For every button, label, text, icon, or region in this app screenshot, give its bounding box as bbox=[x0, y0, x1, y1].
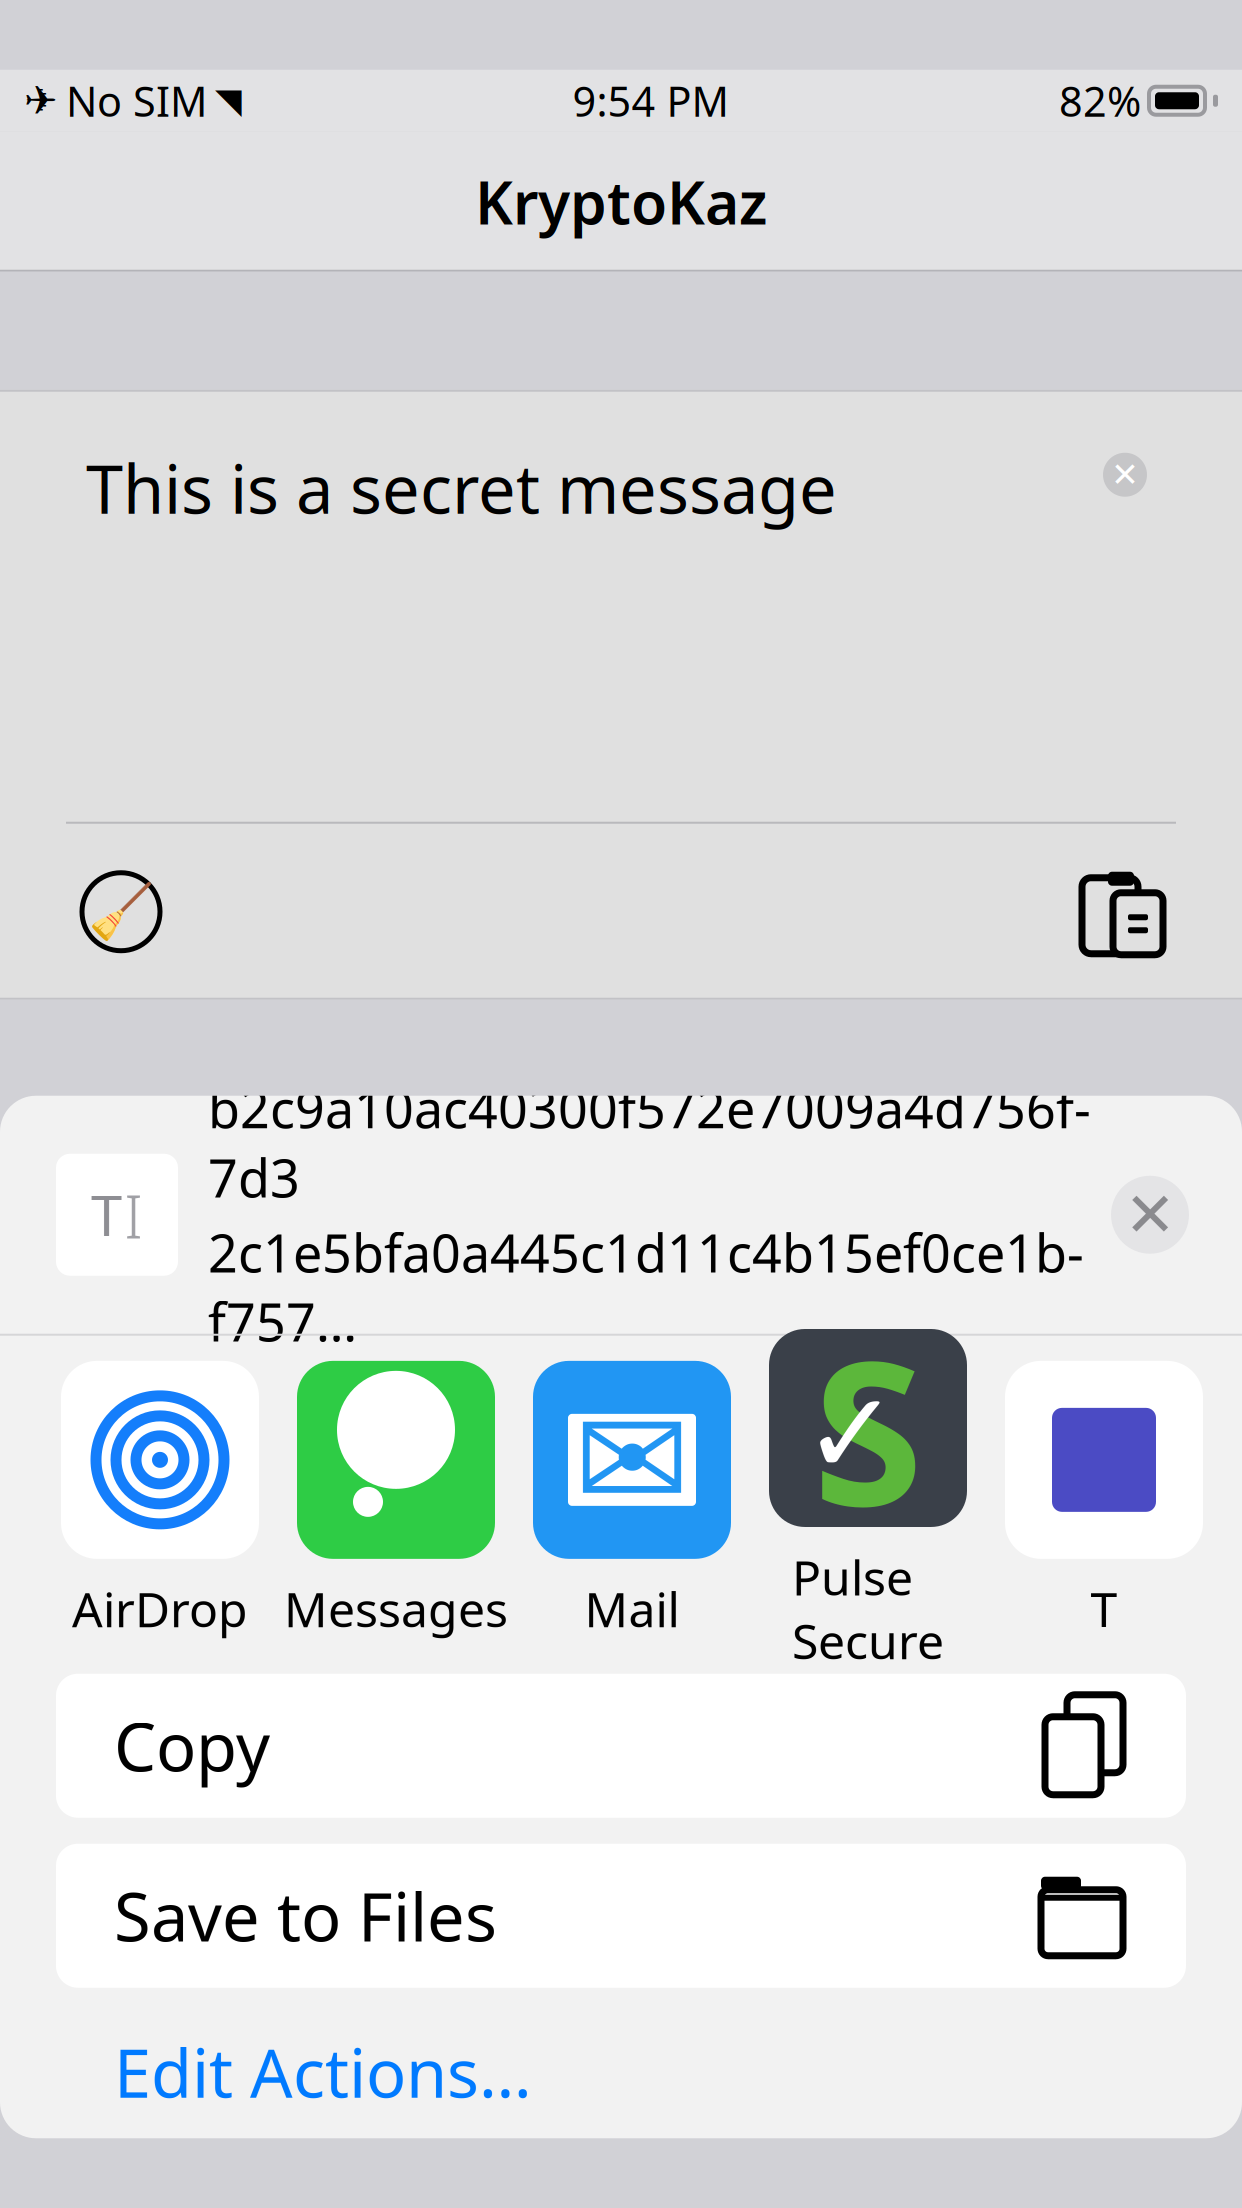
staticText: Copy bbox=[114, 1701, 270, 1790]
staticText: 🧹 bbox=[88, 881, 154, 942]
staticText: ✈ bbox=[24, 78, 58, 123]
staticText: T bbox=[1090, 1577, 1117, 1641]
button[interactable]: Clear message bbox=[78, 869, 164, 955]
button[interactable]: Close bbox=[1100, 1165, 1200, 1265]
staticText: ✓ bbox=[803, 1369, 899, 1499]
staticText: 2c1e5bfa0a445c1d11c4b15ef0ce1bf757… bbox=[208, 1218, 1084, 1356]
staticText: 9:54 PM bbox=[572, 73, 728, 128]
button[interactable]: ✉ bbox=[514, 1361, 750, 1641]
staticText: 82% bbox=[1059, 73, 1141, 128]
staticText: ✕ bbox=[1124, 1180, 1175, 1249]
button[interactable]: Edit Actions… bbox=[114, 2014, 532, 2130]
button[interactable]: More share targets bbox=[986, 1361, 1222, 1641]
staticText: S bbox=[813, 1295, 923, 1561]
staticText: ✉ bbox=[574, 1381, 690, 1539]
staticText: b2c9a10ac40300f572e7009a4d756f7d3 bbox=[208, 1074, 1091, 1212]
staticText: I bbox=[124, 1174, 143, 1255]
staticText: AirDrop bbox=[72, 1577, 248, 1641]
staticText: No SIM bbox=[66, 73, 207, 128]
staticText: KryptoKaz bbox=[475, 163, 767, 241]
button[interactable]: Clear text bbox=[1094, 444, 1156, 506]
staticText: Messages bbox=[284, 1577, 508, 1641]
staticText: Save to Files bbox=[114, 1871, 497, 1960]
staticText: T bbox=[91, 1178, 122, 1252]
staticText: Edit Actions… bbox=[114, 2028, 532, 2116]
button[interactable]: S bbox=[750, 1329, 986, 1672]
button[interactable]: Save to Files bbox=[56, 1844, 1186, 1988]
button[interactable]: AirDrop bbox=[42, 1361, 278, 1641]
staticText: ✕ bbox=[1111, 456, 1139, 494]
staticText: This is a secret message bbox=[86, 444, 837, 532]
staticText: Pulse Secure bbox=[792, 1545, 944, 1672]
staticText: Mail bbox=[584, 1577, 679, 1641]
button[interactable]: Paste bbox=[1078, 866, 1164, 958]
button[interactable]: Copy bbox=[56, 1674, 1186, 1818]
button[interactable]: Messages bbox=[278, 1361, 514, 1641]
staticText: ◥ bbox=[215, 81, 242, 120]
